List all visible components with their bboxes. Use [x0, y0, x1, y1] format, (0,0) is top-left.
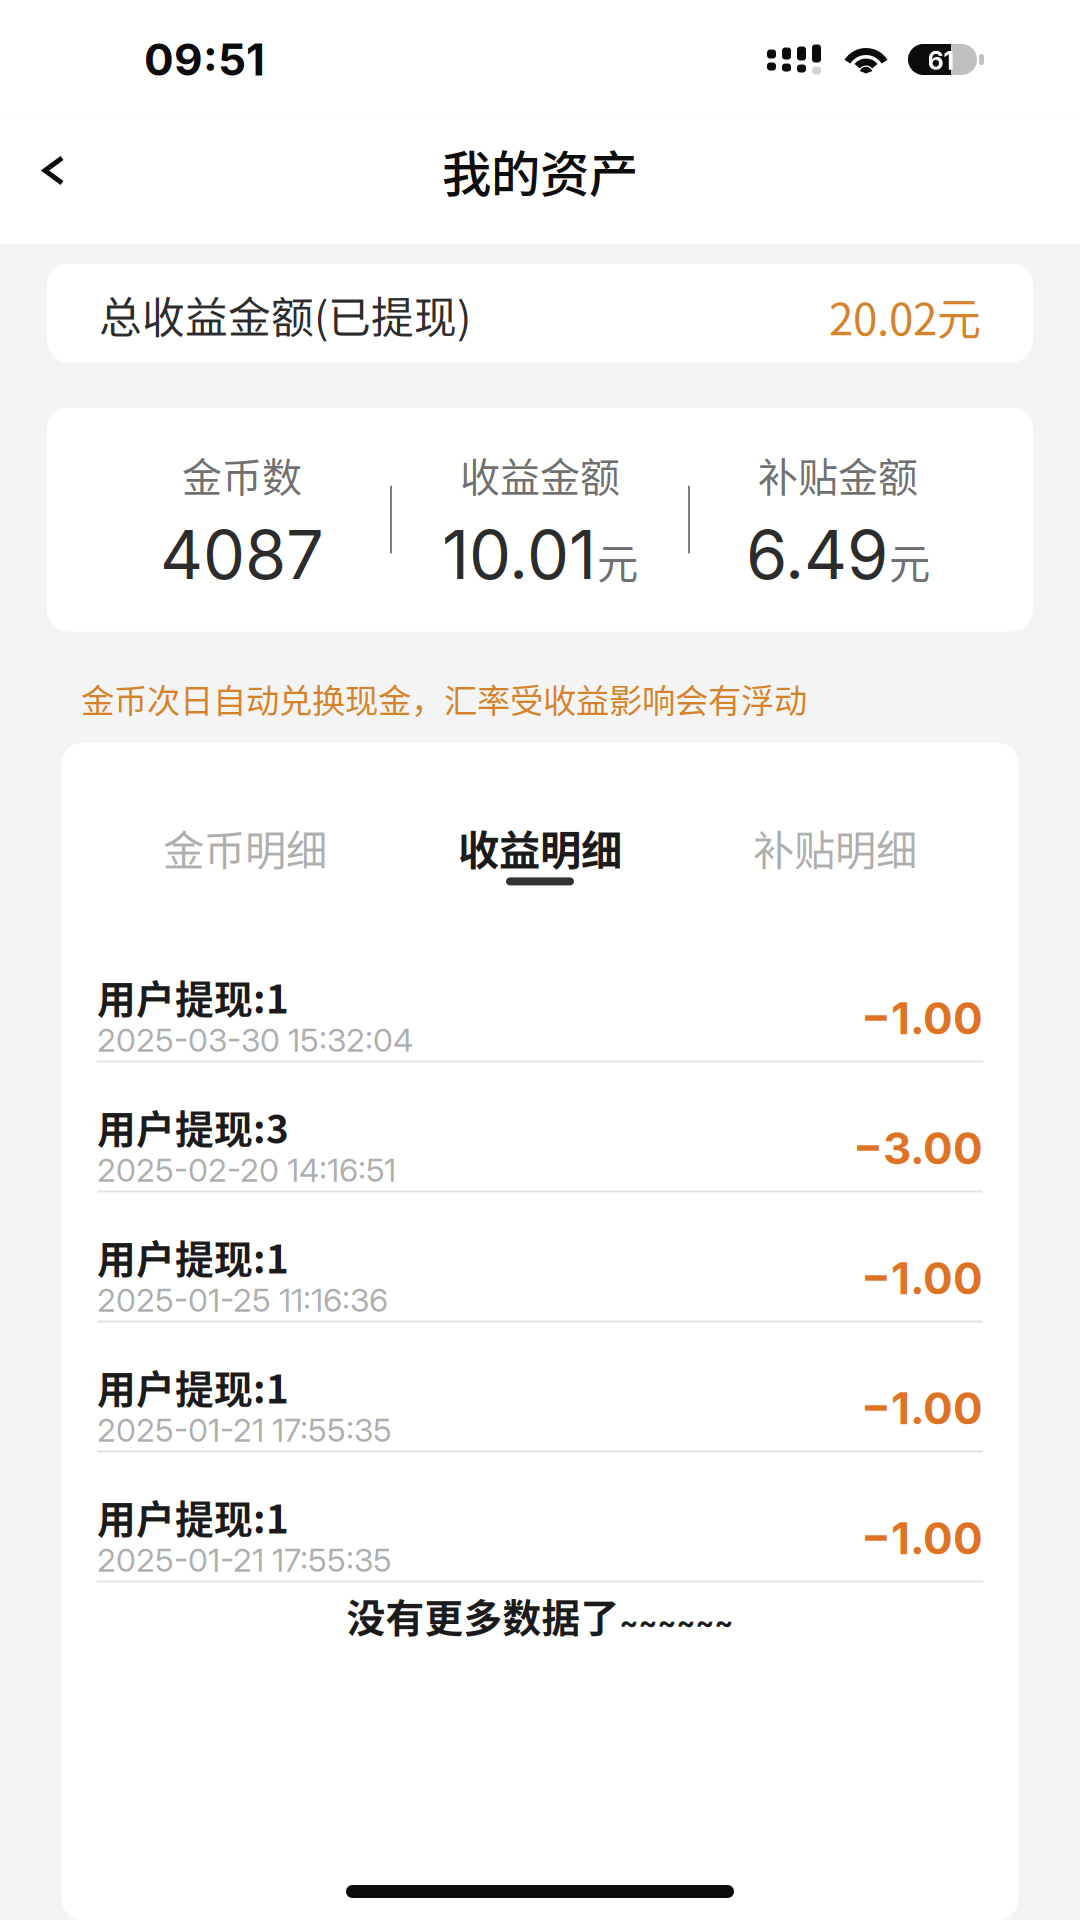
- staticText: −1.00: [861, 992, 983, 1045]
- staticText: 10.01: [442, 514, 596, 595]
- button[interactable]: 总收益金额(已提现): [47, 263, 1033, 362]
- staticText: 补贴明细: [753, 818, 917, 877]
- button[interactable]: 用户提现:1: [97, 932, 983, 1062]
- staticText: 金币次日自动兑换现金，汇率受收益影响会有浮动: [81, 674, 807, 723]
- staticText: 2025-02-20 14:16:51: [97, 1151, 396, 1189]
- staticText: 用户提现:1: [97, 1359, 289, 1415]
- staticText: 6.49: [746, 514, 888, 595]
- button[interactable]: 补贴明细: [687, 803, 982, 899]
- staticText: 没有更多数据了: [346, 1587, 619, 1643]
- staticText: 收益金额: [460, 445, 620, 503]
- staticText: 2025-03-30 15:32:04: [97, 1021, 413, 1059]
- staticText: 20.02元: [829, 284, 981, 348]
- button[interactable]: 用户提现:1: [97, 1322, 983, 1452]
- staticText: 金币数: [182, 445, 302, 503]
- staticText: −1.00: [861, 1252, 983, 1305]
- button[interactable]: 用户提现:1: [97, 1192, 983, 1322]
- staticText: 4087: [160, 514, 324, 595]
- staticText: 用户提现:1: [97, 969, 289, 1025]
- staticText: 61: [927, 45, 954, 76]
- staticText: 总收益金额(已提现): [99, 284, 471, 346]
- staticText: 补贴金额: [758, 445, 918, 503]
- staticText: −3.00: [853, 1122, 983, 1175]
- staticText: ~~~~~~: [619, 1605, 733, 1639]
- staticText: 用户提现:3: [97, 1099, 289, 1155]
- staticText: 我的资产: [442, 135, 638, 206]
- staticText: 用户提现:1: [97, 1229, 289, 1285]
- staticText: 2025-01-21 17:55:35: [97, 1541, 392, 1579]
- staticText: 元: [889, 531, 930, 591]
- staticText: 2025-01-21 17:55:35: [97, 1411, 392, 1449]
- button[interactable]: 用户提现:1: [97, 1452, 983, 1582]
- staticText: 金币明细: [163, 818, 327, 877]
- staticText: 用户提现:1: [97, 1489, 289, 1545]
- staticText: −1.00: [861, 1512, 983, 1565]
- staticText: 元: [597, 531, 638, 591]
- staticText: 2025-01-25 11:16:36: [97, 1281, 388, 1319]
- staticText: 收益明细: [458, 818, 622, 877]
- button[interactable]: 金币明细: [97, 803, 392, 899]
- button[interactable]: 收益明细: [392, 803, 687, 899]
- button[interactable]: 返回: [0, 126, 100, 235]
- staticText: −1.00: [861, 1382, 983, 1435]
- staticText: 09:51: [144, 33, 265, 86]
- button[interactable]: 用户提现:3: [97, 1062, 983, 1192]
